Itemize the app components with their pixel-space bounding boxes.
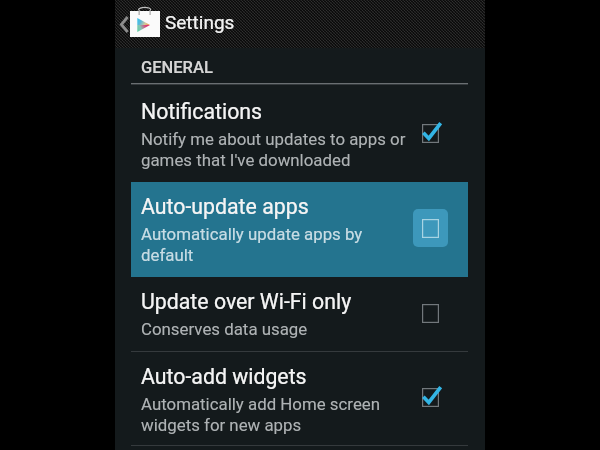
button[interactable]: Update over Wi-Fi only (131, 277, 468, 351)
button[interactable]: Navigate up (117, 0, 131, 48)
button[interactable]: Auto-add widgets (409, 376, 450, 417)
button[interactable]: Auto-update apps (131, 182, 468, 277)
staticText: Auto-update apps (141, 195, 309, 219)
button[interactable]: Auto-update apps (409, 207, 450, 248)
staticText: Auto-add widgets (141, 365, 307, 389)
staticText: Notify me about updates to apps or games… (141, 128, 413, 170)
staticText: Automatically update apps by default (141, 223, 413, 265)
staticText: Update over Wi-Fi only (141, 290, 352, 314)
staticText: Settings (165, 11, 235, 33)
button[interactable]: Auto-add widgets (131, 352, 468, 445)
staticText: Automatically add Home screen widgets fo… (141, 393, 413, 435)
button[interactable]: Notifications (131, 87, 468, 182)
staticText: Conserves data usage (141, 318, 308, 339)
button[interactable]: Notifications (409, 112, 450, 153)
staticText: GENERAL (141, 58, 213, 77)
staticText: Notifications (141, 100, 263, 124)
button[interactable]: Update over Wi-Fi only (409, 292, 450, 333)
